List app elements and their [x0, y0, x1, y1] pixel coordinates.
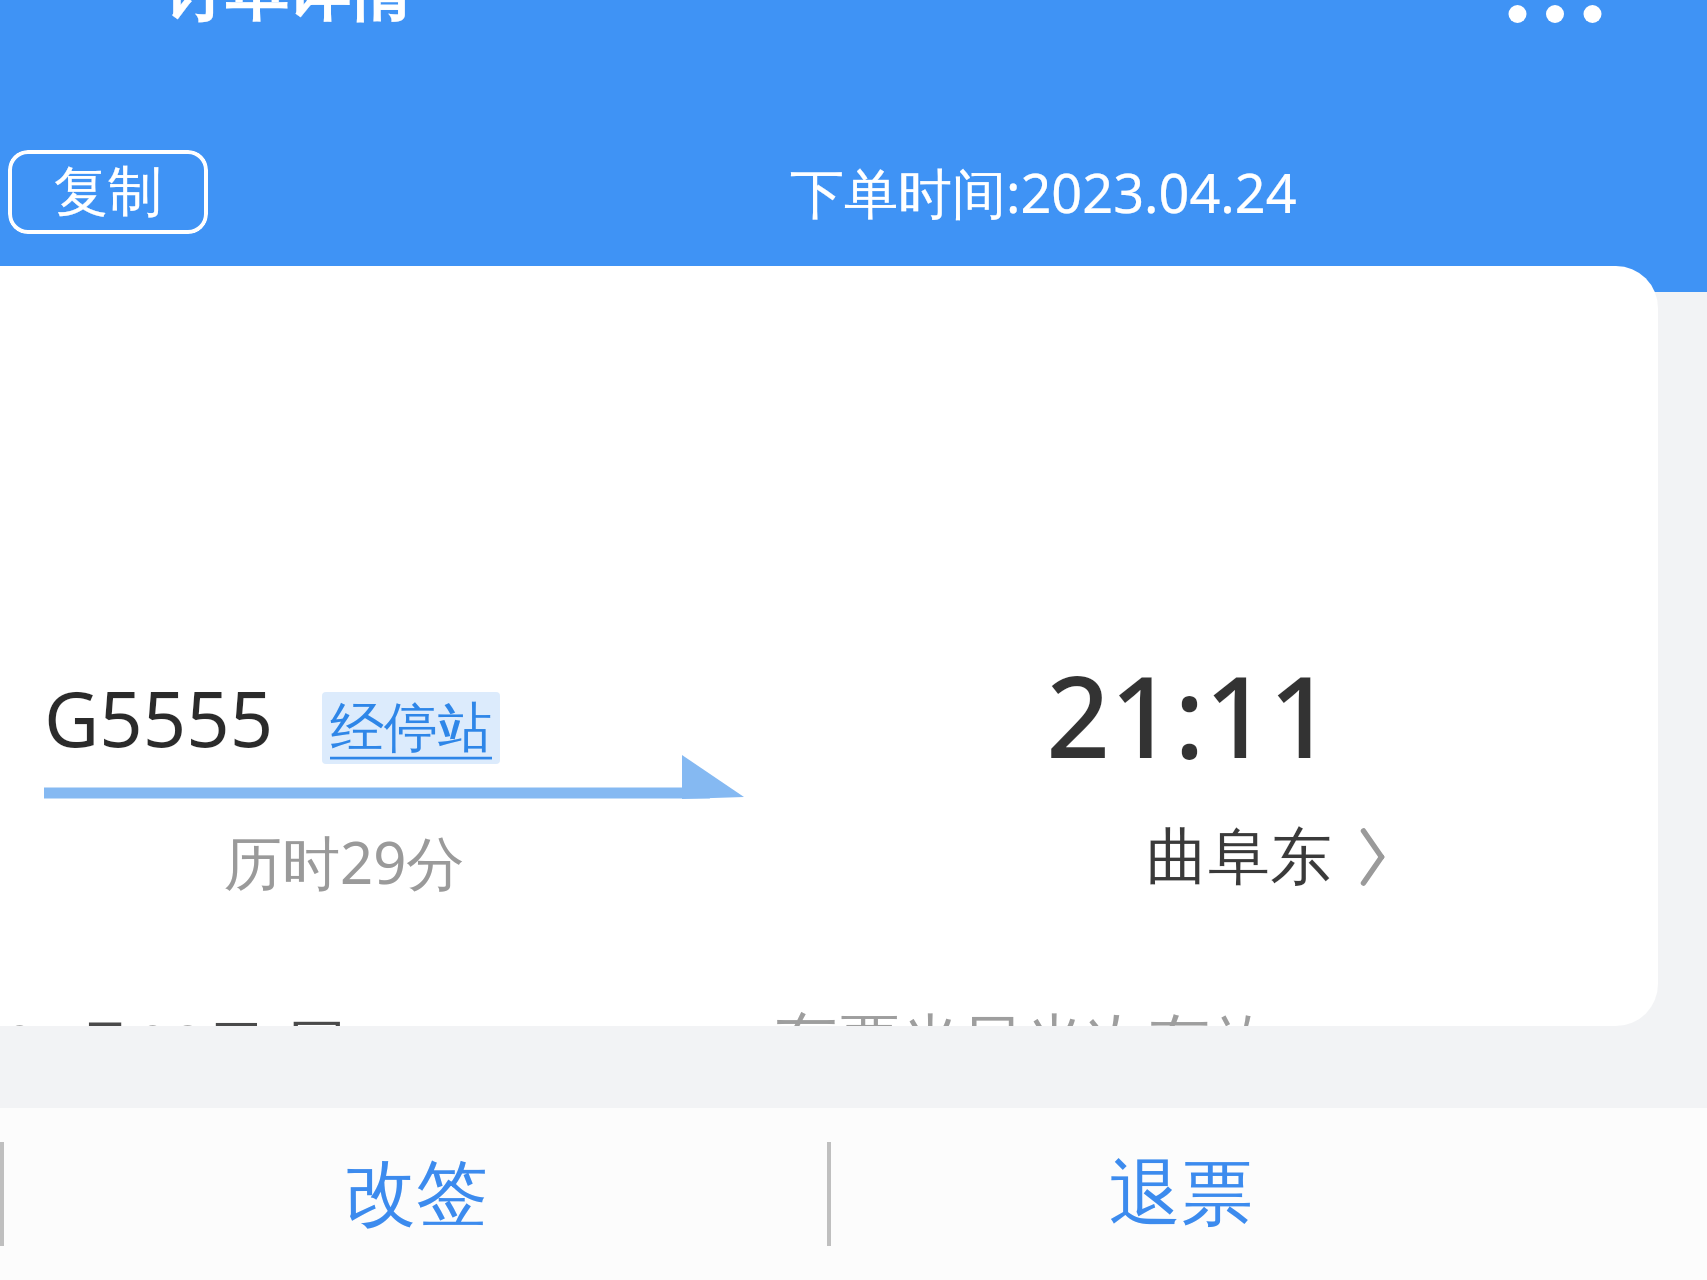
- staticText: 历时29分: [224, 822, 465, 901]
- staticText: 改签: [344, 1149, 488, 1240]
- staticText: 订单详情: [163, 0, 411, 32]
- staticText: 车票当日当次有效: [776, 1004, 1272, 1026]
- staticText: 复制: [54, 158, 162, 226]
- staticText: 经停站: [330, 694, 492, 762]
- staticText: 下单时间:2023.04.24: [790, 155, 1297, 229]
- button[interactable]: More options: [1480, 0, 1630, 26]
- button[interactable]: 经停站: [322, 692, 500, 764]
- button[interactable]: 曲阜东: [1146, 818, 1388, 896]
- staticText: 曲阜东: [1146, 818, 1332, 896]
- button[interactable]: 复制: [8, 150, 208, 234]
- staticText: 年05月02日 周二: [0, 1004, 408, 1026]
- staticText: 退票: [1109, 1149, 1253, 1240]
- button[interactable]: 改签: [4, 1108, 827, 1280]
- staticText: 21:11: [1046, 638, 1333, 791]
- button[interactable]: 退票: [831, 1108, 1707, 1280]
- staticText: G5555: [44, 666, 274, 770]
